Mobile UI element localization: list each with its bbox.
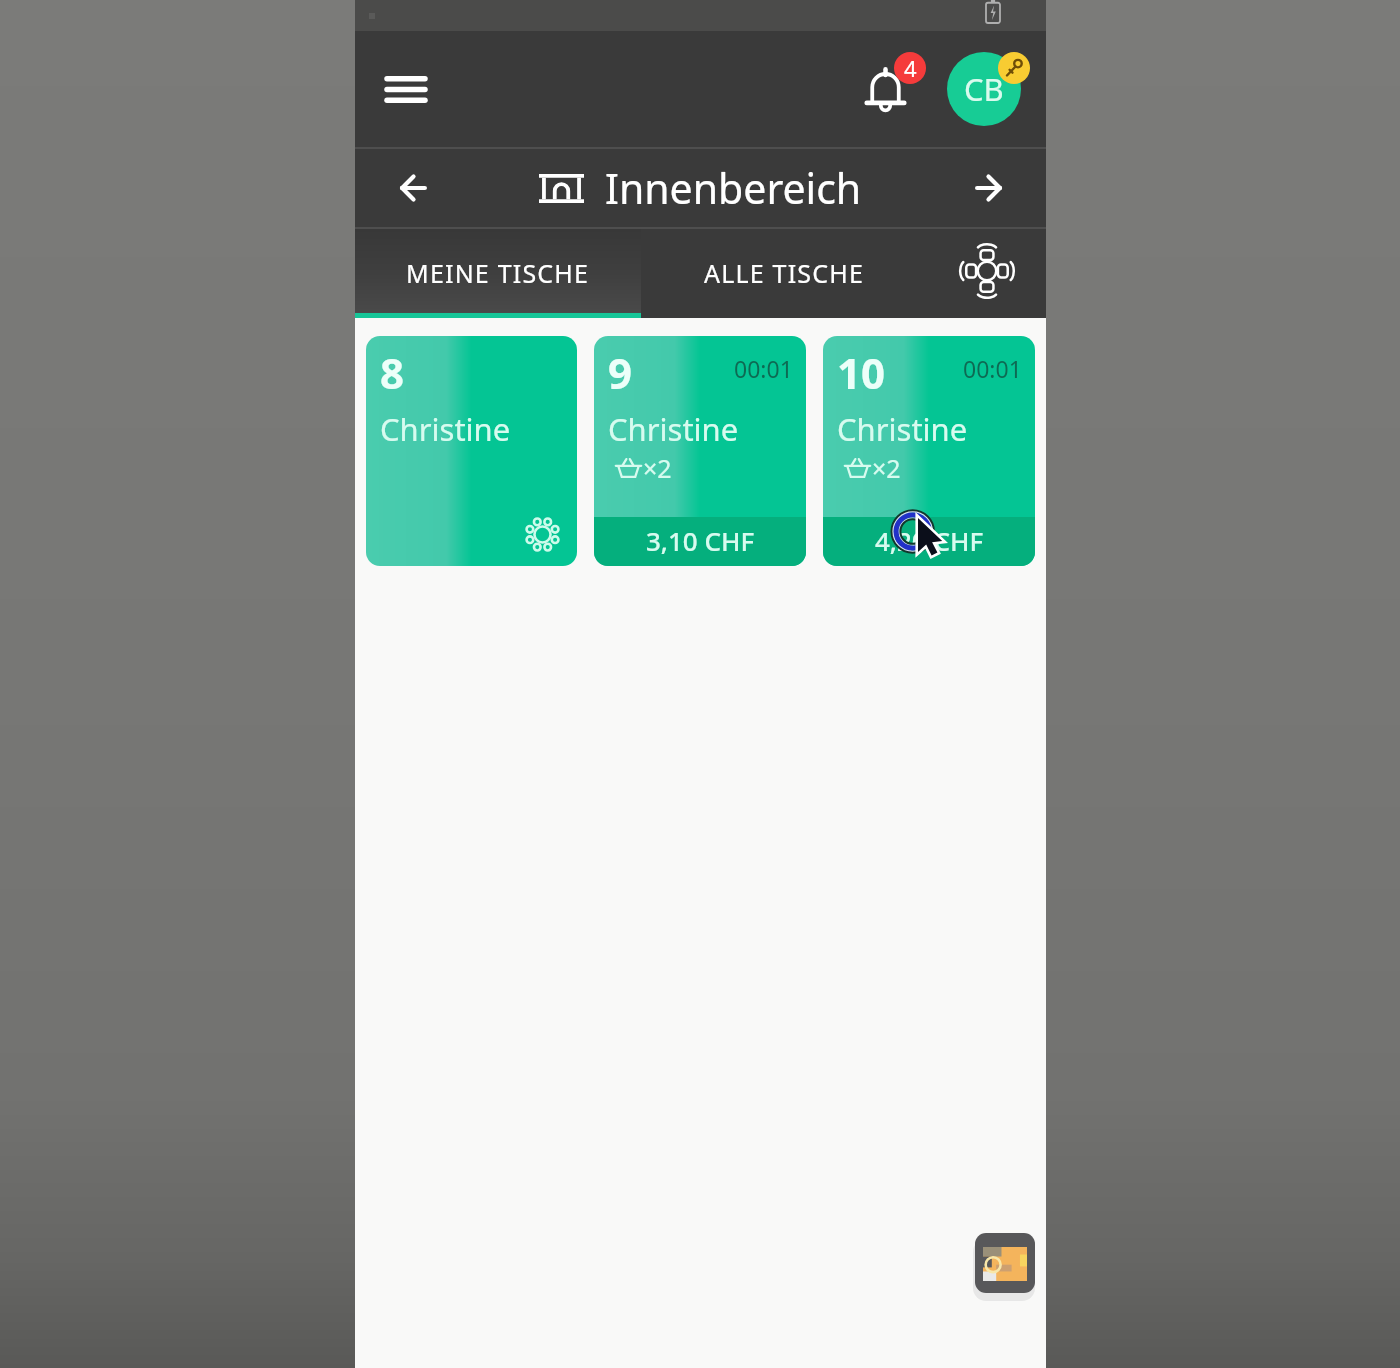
button[interactable]: Table layout bbox=[927, 229, 1046, 318]
staticText: 00:01 bbox=[734, 353, 793, 384]
staticText: CB bbox=[964, 68, 1004, 110]
staticText: Innenbereich bbox=[605, 160, 862, 216]
staticText: 4 bbox=[904, 53, 917, 83]
staticText: 4,20 CHF bbox=[875, 523, 984, 558]
staticText: 00:01 bbox=[963, 353, 1022, 384]
button[interactable]: 9 bbox=[594, 336, 806, 566]
button[interactable]: MEINE TISCHE bbox=[355, 229, 641, 318]
staticText: 10 bbox=[837, 344, 886, 401]
staticText: 8 bbox=[380, 344, 405, 401]
button[interactable]: Notifications bbox=[851, 37, 923, 109]
button[interactable]: 8 bbox=[366, 336, 577, 566]
staticText: Christine bbox=[608, 408, 739, 450]
staticText: 3,10 CHF bbox=[646, 523, 755, 558]
staticText: Christine bbox=[380, 408, 511, 450]
button[interactable]: Screenshot preview bbox=[975, 1233, 1035, 1293]
button[interactable]: Menu bbox=[375, 58, 437, 120]
staticText: 9 bbox=[608, 344, 633, 401]
button[interactable]: 10 bbox=[823, 336, 1035, 566]
staticText: Christine bbox=[837, 408, 968, 450]
button[interactable]: ALLE TISCHE bbox=[641, 229, 927, 318]
staticText: ×2 bbox=[872, 451, 901, 485]
button[interactable]: Next area bbox=[960, 160, 1016, 216]
staticText: MEINE TISCHE bbox=[406, 256, 590, 290]
button[interactable]: Previous area bbox=[385, 160, 441, 216]
staticText: ×2 bbox=[643, 451, 672, 485]
staticText: ALLE TISCHE bbox=[704, 256, 865, 290]
button[interactable]: Account bbox=[947, 52, 1021, 126]
